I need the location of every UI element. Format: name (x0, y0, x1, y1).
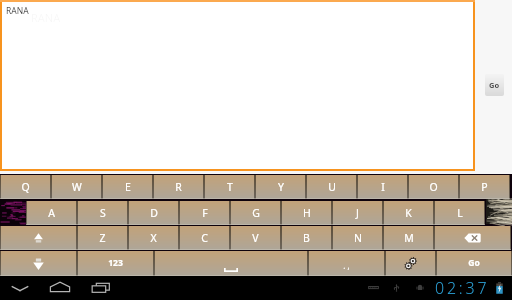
staticText: E (125, 180, 131, 194)
button[interactable]: D (128, 201, 179, 225)
staticText: S (100, 206, 106, 220)
staticText: H (303, 206, 311, 220)
button[interactable]: M (383, 226, 434, 250)
button[interactable]: X (128, 226, 179, 250)
staticText: G (252, 206, 260, 220)
staticText: Go (468, 257, 480, 269)
button[interactable]: R (153, 175, 204, 199)
staticText: U (328, 180, 336, 194)
button[interactable]: O (408, 175, 459, 199)
button[interactable]: F (179, 201, 230, 225)
staticText: . , (343, 260, 350, 271)
staticText: O (429, 180, 438, 194)
button[interactable]: I (357, 175, 408, 199)
button[interactable]: Go (485, 74, 504, 96)
button[interactable]: A (26, 201, 77, 225)
button[interactable]: Recent apps (88, 279, 114, 297)
staticText: T (227, 180, 233, 194)
button[interactable] (0, 226, 77, 250)
button[interactable]: Y (255, 175, 306, 199)
button[interactable]: N (332, 226, 383, 250)
staticText: 02:37 (435, 277, 490, 299)
staticText: Q (21, 180, 30, 194)
button[interactable]: RANA (2, 2, 473, 169)
button[interactable]: K (383, 201, 434, 225)
button[interactable] (434, 226, 511, 250)
staticText: Z (99, 231, 106, 245)
button[interactable]: Go (436, 251, 512, 276)
button[interactable]: Z (77, 226, 128, 250)
button[interactable]: Back (7, 279, 33, 297)
staticText: Go (489, 80, 500, 90)
button[interactable]: H (281, 201, 332, 225)
staticText: RANA (6, 5, 29, 17)
button[interactable]: W (51, 175, 102, 199)
staticText: M (404, 231, 414, 245)
staticText: D (150, 206, 158, 220)
staticText: A (48, 206, 55, 220)
staticText: K (405, 206, 412, 220)
staticText: I (381, 180, 385, 194)
staticText: W (72, 180, 82, 194)
button[interactable]: G (230, 201, 281, 225)
staticText: 123 (108, 257, 123, 269)
button[interactable]: E (102, 175, 153, 199)
button[interactable]: S (77, 201, 128, 225)
button[interactable]: Home (47, 279, 73, 297)
button[interactable] (385, 251, 436, 276)
button[interactable]: C (179, 226, 230, 250)
button[interactable]: 123 (77, 251, 154, 276)
button[interactable]: U (306, 175, 357, 199)
button[interactable]: V (230, 226, 281, 250)
button[interactable] (0, 251, 77, 276)
button[interactable]: L (434, 201, 485, 225)
button[interactable]: T (204, 175, 255, 199)
staticText: Y (278, 180, 284, 194)
staticText: F (202, 206, 208, 220)
staticText: J (356, 206, 359, 220)
button[interactable]: Q (0, 175, 51, 199)
button[interactable]: B (281, 226, 332, 250)
staticText: L (457, 206, 463, 220)
staticText: N (354, 231, 362, 245)
staticText: C (201, 231, 208, 245)
staticText: X (150, 231, 157, 245)
button[interactable]: J (332, 201, 383, 225)
staticText: R (175, 180, 182, 194)
button[interactable]: P (459, 175, 510, 199)
staticText: V (252, 231, 259, 245)
button[interactable] (154, 251, 308, 276)
button[interactable]: . , (308, 251, 385, 276)
staticText: B (303, 231, 310, 245)
staticText: P (481, 180, 488, 194)
